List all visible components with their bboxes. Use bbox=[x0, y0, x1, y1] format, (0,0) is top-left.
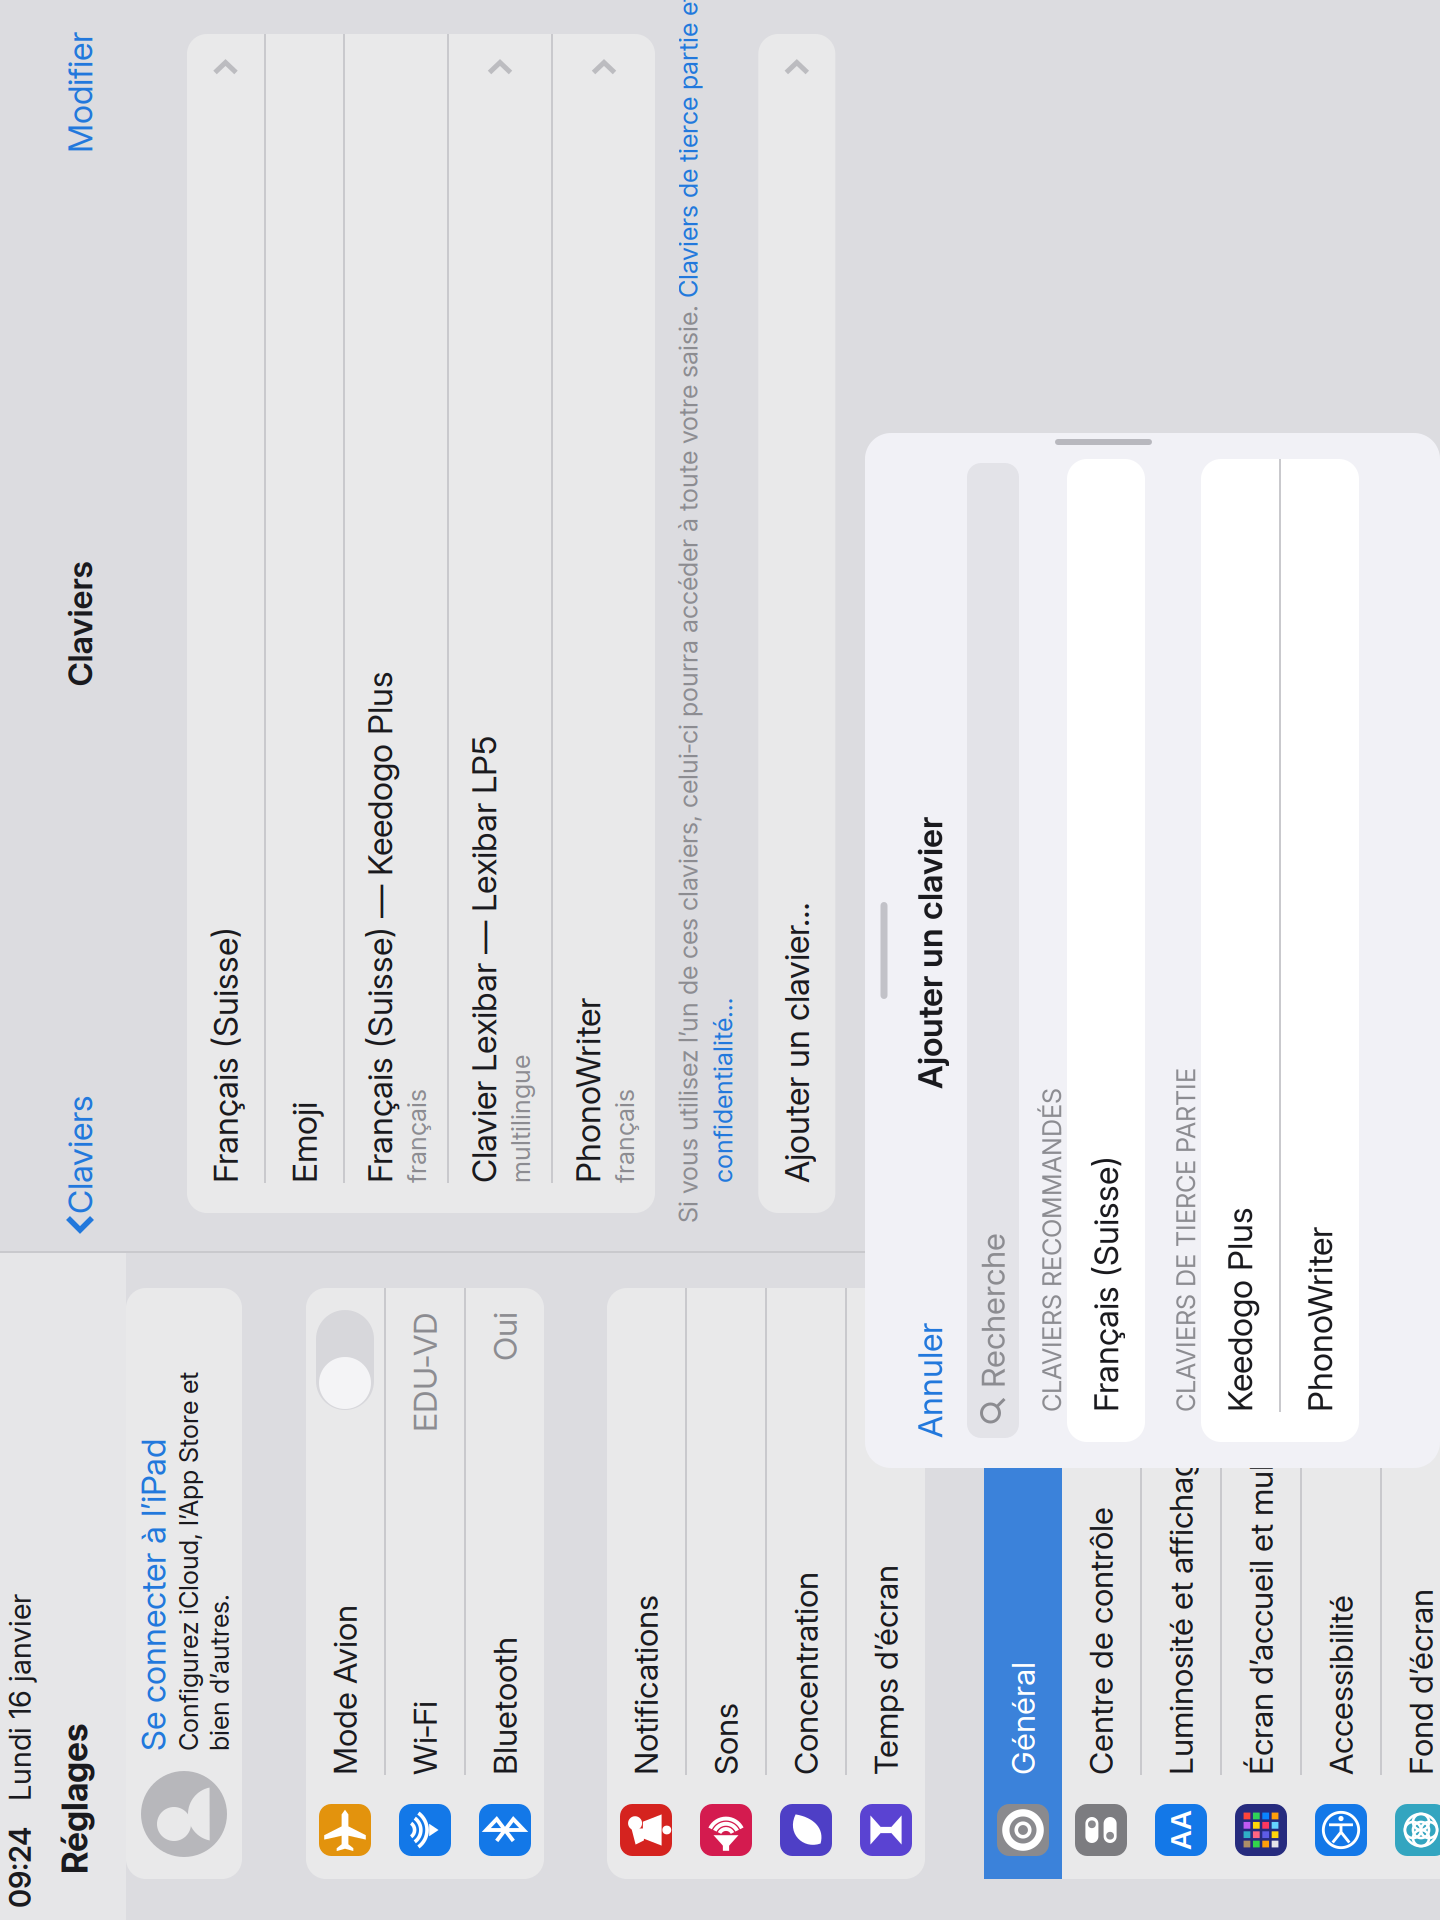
staticText: PhonoWriter bbox=[268, 1540, 453, 1580]
staticText: multilingue bbox=[497, 745, 625, 776]
button[interactable]: Mode Avion bbox=[0, 546, 392, 624]
button[interactable]: Français (Suisse) bbox=[467, 427, 1440, 504]
button[interactable]: PhonoWriter bbox=[467, 793, 1440, 895]
button[interactable]: Clavier Lexibar — Lexibar LP5 bbox=[467, 689, 1440, 791]
button[interactable]: Sons bbox=[0, 927, 392, 1005]
staticText: Emoji bbox=[497, 524, 578, 565]
staticText: Mode Avion bbox=[0, 566, 75, 604]
button[interactable]: Général bbox=[0, 1224, 392, 1302]
button[interactable]: Centre de contrôle bbox=[0, 1302, 392, 1380]
button[interactable]: PhonoWriter bbox=[238, 1521, 1221, 1599]
button[interactable]: Wi‑Fi bbox=[0, 626, 392, 704]
staticText: PhonoWriter bbox=[497, 808, 682, 848]
button[interactable]: Ajouter un clavier… bbox=[467, 998, 1440, 1075]
staticText: EDU‑VD bbox=[248, 646, 368, 684]
button[interactable]: Se connecter à l’iPad bbox=[0, 366, 392, 482]
staticText: Clavier Lexibar — Lexibar LP5 bbox=[497, 704, 944, 744]
staticText: Ajouter un clavier… bbox=[497, 1017, 778, 1057]
staticText: Annuler bbox=[242, 1150, 357, 1190]
button[interactable]: Concentration bbox=[0, 1007, 392, 1085]
button[interactable]: Claviers bbox=[429, 300, 585, 340]
staticText: Ajouter un clavier bbox=[591, 1150, 863, 1190]
button[interactable]: AA bbox=[0, 1382, 392, 1460]
staticText: Temps d’écran bbox=[0, 1107, 115, 1145]
staticText: Général bbox=[0, 1244, 18, 1282]
staticText: Se connecter à l’iPad bbox=[0, 373, 241, 413]
staticText: Français (Suisse) — Keedogo Plus bbox=[497, 600, 1009, 640]
button[interactable]: Français (Suisse) bbox=[238, 1307, 1221, 1385]
button[interactable]: Accessibilité bbox=[0, 1542, 392, 1620]
button[interactable]: Temps d’écran bbox=[0, 1087, 392, 1165]
button[interactable]: Keedogo Plus bbox=[238, 1441, 1221, 1519]
staticText: Luminosité et affichage bbox=[0, 1402, 240, 1440]
button[interactable]: Notifications bbox=[0, 847, 392, 925]
button[interactable]: Emoji bbox=[467, 506, 1440, 583]
staticText: Keedogo Plus bbox=[268, 1460, 473, 1500]
staticText: Claviers bbox=[466, 300, 585, 340]
staticText: Accessibilité bbox=[0, 1562, 85, 1600]
staticText: Oui bbox=[319, 726, 368, 764]
staticText: Écran d’accueil et multitâche bbox=[0, 1482, 314, 1520]
staticText: Configurez iCloud, l’App Store et bbox=[0, 413, 308, 444]
staticText: Si vous utilisez l’un de ces claviers, c… bbox=[457, 913, 1382, 944]
staticText: Français (Suisse) bbox=[268, 1326, 524, 1366]
staticText: français bbox=[497, 849, 591, 880]
staticText: CLAVIERS RECOMMANDÉS bbox=[268, 1277, 592, 1307]
button[interactable]: Fond d’écran bbox=[0, 1622, 392, 1700]
button[interactable]: Français (Suisse) — Keedogo Plus bbox=[467, 585, 1440, 687]
staticText: français bbox=[497, 641, 591, 672]
button[interactable]: Bluetooth bbox=[0, 706, 392, 784]
staticText: Fond d’écran bbox=[0, 1642, 91, 1680]
staticText: Français (Suisse) bbox=[497, 445, 753, 486]
staticText: confidentialité… bbox=[497, 948, 682, 978]
staticText: Recherche bbox=[292, 1214, 447, 1252]
staticText: CLAVIERS DE TIERCE PARTIE bbox=[268, 1411, 612, 1441]
button[interactable]: Annuler bbox=[212, 1150, 357, 1190]
button[interactable]: Écran d’accueil et multitâche bbox=[0, 1462, 392, 1540]
